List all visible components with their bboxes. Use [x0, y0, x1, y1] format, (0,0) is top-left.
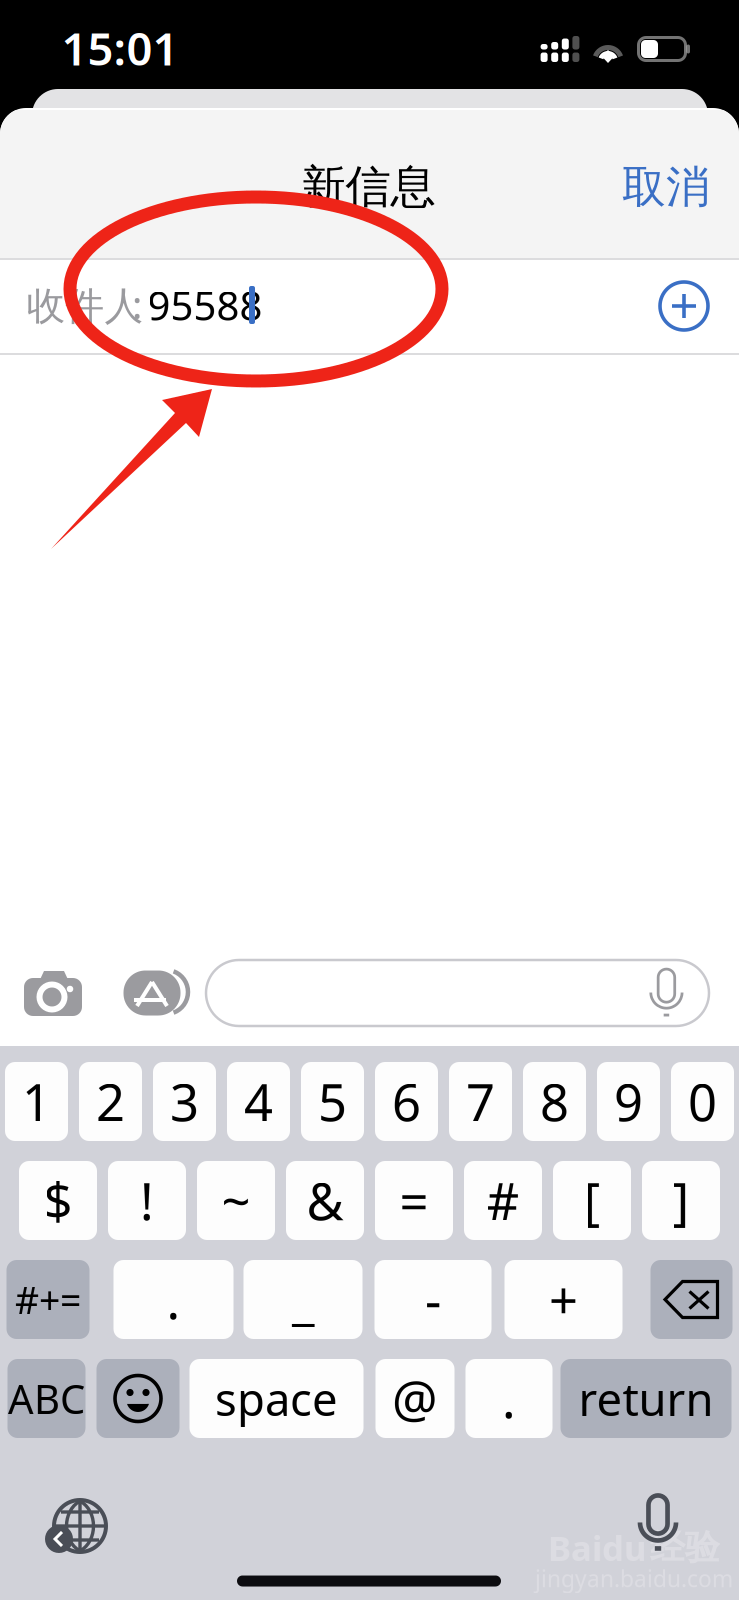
staticText: +	[549, 1266, 578, 1333]
button[interactable]: .	[113, 1260, 233, 1339]
button[interactable]: Emoji	[96, 1359, 179, 1438]
staticText: 1	[22, 1068, 51, 1135]
staticText: :	[132, 278, 142, 330]
staticText: .	[166, 1266, 180, 1333]
button[interactable]: =	[375, 1161, 453, 1240]
button[interactable]: Apps	[116, 970, 188, 1016]
staticText: 取消	[622, 160, 710, 214]
button[interactable]: 8	[523, 1062, 586, 1141]
button[interactable]: Switch keyboard	[43, 1491, 117, 1561]
staticText: 3	[170, 1068, 199, 1135]
staticText: =	[399, 1167, 428, 1234]
button[interactable]: Delete	[650, 1260, 732, 1339]
button[interactable]: #+=	[6, 1260, 89, 1339]
staticText: return	[578, 1368, 713, 1429]
button[interactable]: _	[243, 1260, 362, 1339]
button[interactable]: 7	[449, 1062, 512, 1141]
staticText: 2	[96, 1068, 125, 1135]
button[interactable]: ~	[197, 1161, 275, 1240]
button[interactable]: 6	[375, 1062, 438, 1141]
staticText: $	[43, 1167, 72, 1234]
button[interactable]: 9	[597, 1062, 660, 1141]
staticText: [	[583, 1167, 600, 1234]
button[interactable]: ]	[642, 1161, 720, 1240]
button[interactable]: Dictate	[650, 966, 683, 1020]
staticText: ~	[221, 1167, 250, 1234]
button[interactable]: 2	[79, 1062, 142, 1141]
button[interactable]: &	[286, 1161, 364, 1240]
staticText: space	[215, 1368, 338, 1429]
button[interactable]: 0	[671, 1062, 734, 1141]
button[interactable]: 1	[5, 1062, 68, 1141]
staticText: #+=	[15, 1275, 81, 1324]
staticText: 15:01	[61, 18, 178, 78]
button[interactable]: 取消	[608, 148, 724, 226]
button[interactable]: .	[465, 1359, 552, 1438]
staticText: jingyan.baidu.com	[535, 1563, 733, 1593]
button[interactable]: 4	[227, 1062, 290, 1141]
button[interactable]: 3	[153, 1062, 216, 1141]
staticText: _	[292, 1266, 314, 1333]
staticText: !	[140, 1167, 154, 1234]
staticText: 95588	[147, 278, 262, 331]
staticText: ABC	[8, 1372, 85, 1425]
staticText: 5	[318, 1068, 347, 1135]
staticText: .	[502, 1365, 516, 1432]
button[interactable]: @	[375, 1359, 454, 1438]
button[interactable]: return	[560, 1359, 731, 1438]
staticText: Baidu	[548, 1524, 647, 1570]
staticText: -	[425, 1266, 441, 1333]
button[interactable]: $	[19, 1161, 97, 1240]
staticText: &	[306, 1167, 343, 1234]
button[interactable]: Camera	[24, 970, 82, 1016]
staticText: 8	[540, 1068, 569, 1135]
staticText: 9	[614, 1068, 643, 1135]
button[interactable]: 5	[301, 1062, 364, 1141]
button[interactable]: [	[553, 1161, 631, 1240]
staticText: #	[486, 1167, 519, 1234]
button[interactable]: Dictation	[639, 1492, 677, 1554]
button[interactable]: -	[374, 1260, 491, 1339]
staticText: 新信息	[300, 159, 435, 215]
staticText: ]	[672, 1167, 689, 1234]
button[interactable]: +	[504, 1260, 622, 1339]
staticText: 6	[392, 1068, 421, 1135]
staticText: 0	[688, 1068, 717, 1135]
staticText: 7	[466, 1068, 495, 1135]
staticText: 收件人	[26, 282, 143, 330]
staticText: 经验	[650, 1526, 720, 1569]
button[interactable]: !	[108, 1161, 186, 1240]
button[interactable]: ABC	[7, 1359, 85, 1438]
button[interactable]: space	[189, 1359, 363, 1438]
button[interactable]: #	[464, 1161, 542, 1240]
staticText: @	[392, 1365, 438, 1432]
staticText: 4	[244, 1068, 273, 1135]
button[interactable]: Add contact	[658, 280, 710, 332]
